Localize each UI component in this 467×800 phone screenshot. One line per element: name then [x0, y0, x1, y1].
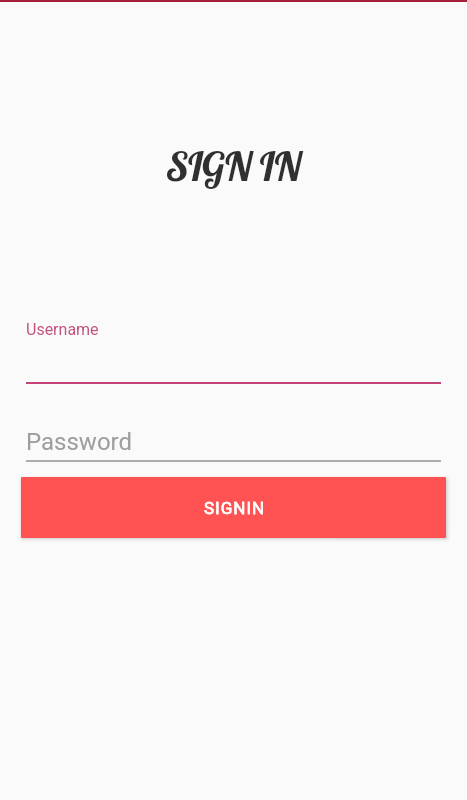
staticText: Username: [26, 320, 99, 339]
button[interactable]: Password: [26, 428, 441, 462]
staticText: SIGN IN: [0, 141, 467, 191]
staticText: SIGNIN: [204, 498, 266, 518]
staticText: Password: [26, 428, 133, 456]
staticText: SIGNIN: [204, 498, 266, 518]
button[interactable]: SIGNIN: [21, 477, 446, 538]
button[interactable]: Username: [26, 320, 441, 384]
